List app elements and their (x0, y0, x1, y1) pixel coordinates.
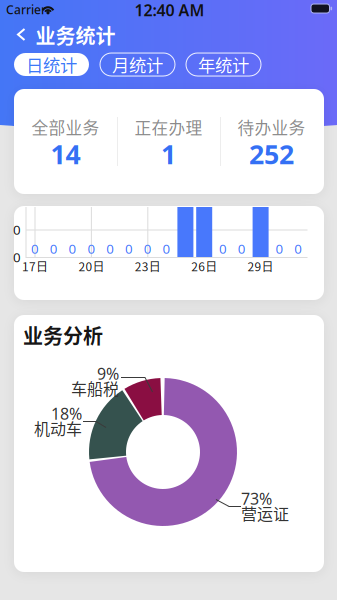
staticText: Carrier (6, 1, 46, 17)
staticText: 0 (50, 240, 58, 257)
button[interactable]: 月统计 (100, 53, 175, 76)
staticText: 0 (275, 240, 283, 257)
staticText: 14 (50, 136, 80, 172)
staticText: 0 (144, 240, 152, 257)
staticText: 17日 (22, 257, 48, 275)
staticText: 0 (31, 240, 39, 257)
staticText: 0 (238, 240, 246, 257)
staticText: 0 (69, 240, 77, 257)
staticText: 0 (294, 240, 302, 257)
staticText: 全部业务 (31, 115, 99, 139)
staticText: 20日 (78, 257, 104, 275)
staticText: 年统计 (198, 52, 249, 77)
button[interactable]: 年统计 (186, 53, 261, 76)
staticText: 73% (241, 488, 272, 509)
staticText: 月统计 (112, 52, 163, 77)
staticText: 0 (163, 240, 171, 257)
staticText: 0 (13, 248, 21, 266)
staticText: 12:40 AM (134, 0, 204, 21)
staticText: 0 (13, 221, 21, 238)
staticText: 1 (161, 136, 176, 172)
staticText: 0 (219, 240, 227, 257)
staticText: 正在办理 (134, 115, 202, 139)
staticText: 18% (51, 403, 82, 424)
staticText: 0 (106, 240, 114, 257)
button[interactable]: 业务统计 (0, 20, 136, 50)
staticText: 车船税 (71, 376, 119, 400)
staticText: 0 (87, 240, 95, 257)
staticText: 日统计 (26, 52, 77, 77)
button[interactable]: 日统计 (14, 53, 89, 76)
staticText: 待办业务 (237, 115, 305, 139)
staticText: 9% (97, 363, 119, 384)
staticText: 0 (125, 240, 133, 257)
staticText: 业务分析 (23, 320, 103, 349)
staticText: 业务统计 (35, 20, 115, 49)
staticText: 26日 (191, 257, 217, 275)
staticText: 252 (249, 136, 294, 172)
staticText: 23日 (135, 257, 161, 275)
staticText: 29日 (248, 257, 274, 275)
staticText: 营运证 (241, 501, 289, 525)
staticText: 机动车 (34, 416, 82, 440)
